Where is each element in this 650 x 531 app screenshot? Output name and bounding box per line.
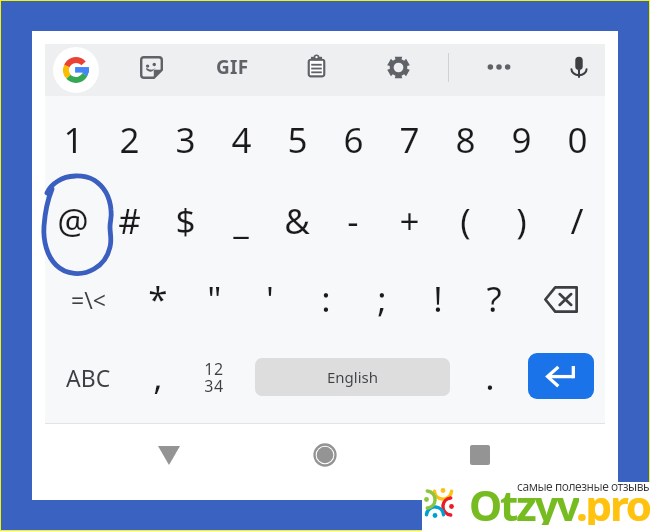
button[interactable]: "	[186, 271, 242, 327]
staticText: !	[433, 275, 443, 323]
button[interactable]: Clipboard	[294, 45, 338, 89]
button[interactable]: GIF	[210, 45, 254, 89]
button[interactable]: Home	[303, 433, 347, 477]
staticText: 4	[231, 116, 252, 164]
button[interactable]: *	[130, 271, 186, 327]
staticText: 7	[399, 116, 420, 164]
staticText: .pro	[576, 476, 650, 525]
button[interactable]: Numbers	[186, 352, 242, 402]
button[interactable]: !	[410, 271, 466, 327]
staticText: 1	[63, 116, 84, 164]
button[interactable]: ?	[466, 271, 522, 327]
button[interactable]: +	[381, 193, 437, 249]
button[interactable]: 2	[101, 112, 157, 168]
staticText: 9	[511, 116, 532, 164]
button[interactable]: Voice input	[557, 45, 601, 89]
button[interactable]: 5	[269, 112, 325, 168]
staticText: 8	[455, 116, 476, 164]
staticText: )	[516, 197, 527, 245]
button[interactable]: /	[549, 193, 605, 249]
button[interactable]: ABC	[53, 352, 123, 402]
staticText: ?	[486, 275, 502, 323]
button[interactable]: ;	[354, 271, 410, 327]
staticText: -	[347, 197, 359, 245]
button[interactable]: $	[157, 193, 213, 249]
staticText: =\<	[71, 284, 106, 315]
button[interactable]: 1	[45, 112, 101, 168]
button[interactable]: 3	[157, 112, 213, 168]
staticText: 6	[343, 116, 364, 164]
button[interactable]: ,	[130, 349, 186, 405]
staticText: /	[570, 197, 584, 245]
button[interactable]: '	[242, 271, 298, 327]
staticText: самые полезные отзывы	[517, 478, 650, 494]
button[interactable]: .	[462, 349, 518, 405]
staticText: ,	[153, 353, 163, 401]
staticText: @	[57, 197, 89, 245]
button[interactable]: #	[101, 193, 157, 249]
button[interactable]: -	[325, 193, 381, 249]
button[interactable]: :	[298, 271, 354, 327]
staticText: 2	[119, 116, 140, 164]
button[interactable]: Enter	[528, 353, 594, 399]
staticText: +	[399, 197, 420, 245]
button[interactable]: More symbols	[60, 274, 116, 324]
button[interactable]: Settings	[376, 45, 420, 89]
staticText: '	[266, 275, 274, 323]
button[interactable]: Backspace	[533, 274, 589, 324]
button[interactable]: More options	[477, 45, 521, 89]
staticText: English	[327, 367, 379, 387]
button[interactable]: Recent apps	[458, 433, 502, 477]
button[interactable]: Back	[147, 433, 191, 477]
staticText: :	[321, 275, 331, 323]
staticText: 5	[287, 116, 308, 164]
staticText: 12 34	[204, 358, 224, 396]
button[interactable]: Stickers	[129, 45, 173, 89]
button[interactable]: 8	[437, 112, 493, 168]
staticText: Otzyv	[469, 476, 579, 525]
staticText: &	[284, 197, 310, 245]
staticText: 0	[567, 116, 588, 164]
staticText: .	[485, 353, 495, 401]
button[interactable]: (	[437, 193, 493, 249]
button[interactable]: 7	[381, 112, 437, 168]
staticText: #	[118, 197, 141, 245]
staticText: _	[233, 197, 249, 245]
button[interactable]: 4	[213, 112, 269, 168]
button[interactable]: _	[213, 193, 269, 249]
button[interactable]: English	[255, 358, 450, 396]
staticText: ;	[377, 275, 387, 323]
staticText: (	[460, 197, 471, 245]
staticText: *	[148, 275, 168, 323]
button[interactable]: 9	[493, 112, 549, 168]
button[interactable]: Google search	[53, 47, 99, 93]
button[interactable]: @	[45, 193, 101, 249]
staticText: ABC	[66, 362, 111, 393]
button[interactable]: 0	[549, 112, 605, 168]
button[interactable]: )	[493, 193, 549, 249]
button[interactable]: &	[269, 193, 325, 249]
staticText: 3	[175, 116, 196, 164]
staticText: $	[175, 197, 196, 245]
staticText: GIF	[216, 54, 249, 80]
button[interactable]: 6	[325, 112, 381, 168]
staticText: "	[207, 275, 222, 323]
